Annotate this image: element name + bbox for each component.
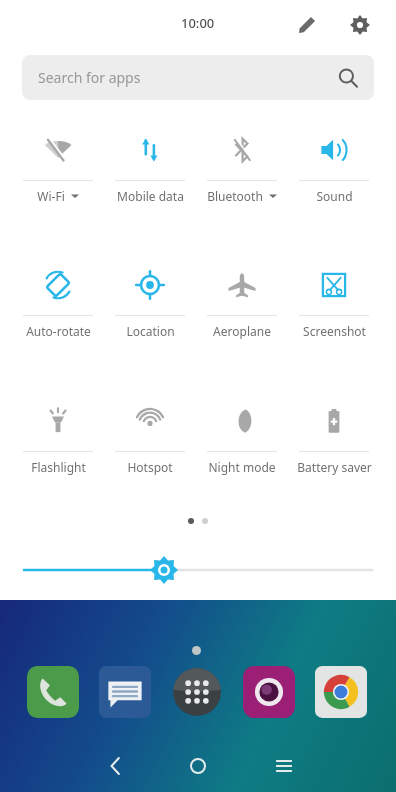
button[interactable]: Location: [104, 253, 196, 345]
staticText: Search for apps: [38, 68, 141, 87]
staticText: Screenshot: [303, 323, 366, 339]
staticText: Bluetooth: [207, 188, 263, 204]
button[interactable]: Recents: [256, 740, 312, 792]
button[interactable]: Home: [170, 740, 226, 792]
button[interactable]: Edit: [291, 9, 323, 41]
button[interactable]: Back: [88, 740, 144, 792]
button[interactable]: Bluetooth: [196, 118, 288, 210]
staticText: Hotspot: [127, 459, 173, 475]
button[interactable]: Night mode: [196, 389, 288, 481]
button[interactable]: Sound: [288, 118, 380, 210]
staticText: Mobile data: [117, 188, 184, 204]
staticText: Aeroplane: [213, 323, 271, 339]
button[interactable]: Apps: [168, 663, 226, 721]
button[interactable]: Battery saver: [288, 389, 380, 481]
button[interactable]: Auto-rotate: [12, 253, 104, 345]
button[interactable]: Brightness: [0, 552, 396, 588]
staticText: 10:00: [181, 14, 215, 32]
staticText: Flashlight: [31, 459, 86, 475]
button[interactable]: Screenshot: [288, 253, 380, 345]
staticText: Wi-Fi: [37, 188, 65, 204]
staticText: Auto-rotate: [26, 323, 91, 339]
button[interactable]: Settings: [344, 9, 376, 41]
button[interactable]: Messages: [96, 663, 154, 721]
button[interactable]: Aeroplane: [196, 253, 288, 345]
staticText: Night mode: [208, 459, 276, 475]
button[interactable]: Chrome: [312, 663, 370, 721]
staticText: Battery saver: [297, 459, 372, 475]
button[interactable]: Mobile data: [104, 118, 196, 210]
staticText: Location: [126, 323, 175, 339]
button[interactable]: Hotspot: [104, 389, 196, 481]
button[interactable]: Flashlight: [12, 389, 104, 481]
button[interactable]: Phone: [24, 663, 82, 721]
staticText: Sound: [316, 188, 353, 204]
button[interactable]: Camera: [240, 663, 298, 721]
button[interactable]: Wi-Fi: [12, 118, 104, 210]
button[interactable]: Search for apps: [22, 55, 374, 100]
